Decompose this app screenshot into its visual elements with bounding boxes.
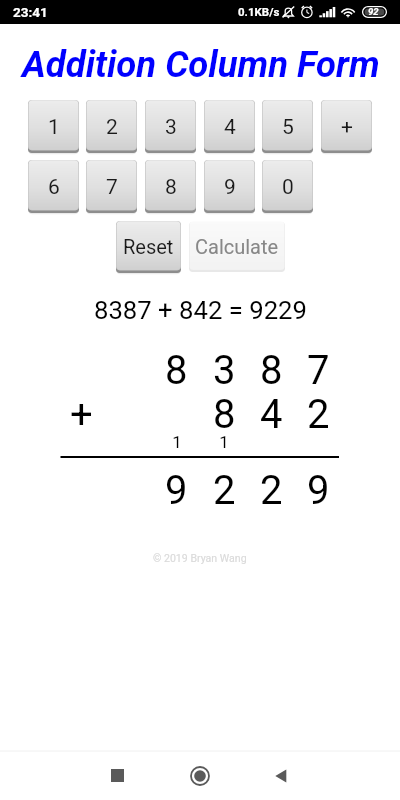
staticText: 8387 + 842 = 9229 bbox=[94, 295, 307, 325]
staticText: 0 bbox=[282, 175, 294, 200]
staticText: 4 bbox=[260, 391, 282, 438]
staticText: 3 bbox=[165, 115, 177, 140]
staticText: 4 bbox=[224, 115, 236, 140]
staticText: 8 bbox=[165, 347, 187, 394]
staticText: 0.1KB/s bbox=[238, 5, 280, 18]
staticText: 7 bbox=[307, 347, 329, 394]
staticText: 5 bbox=[282, 115, 294, 140]
staticText: © 2019 Bryan Wang bbox=[153, 552, 247, 564]
button[interactable]: 1 bbox=[28, 100, 79, 152]
staticText: 7 bbox=[106, 175, 118, 200]
button[interactable]: 3 bbox=[145, 100, 196, 152]
button[interactable]: Recents bbox=[93, 751, 141, 800]
button[interactable]: Reset bbox=[116, 221, 181, 272]
staticText: 1 bbox=[48, 115, 60, 140]
button[interactable]: + bbox=[321, 100, 372, 152]
button[interactable]: 6 bbox=[28, 160, 79, 212]
staticText: 1 bbox=[170, 432, 184, 452]
staticText: 9 bbox=[224, 175, 236, 200]
staticText: 3 bbox=[213, 347, 235, 394]
button[interactable]: 9 bbox=[204, 160, 255, 212]
staticText: 8 bbox=[165, 175, 177, 200]
staticText: 9 bbox=[307, 467, 329, 514]
button[interactable]: 4 bbox=[204, 100, 255, 152]
button[interactable]: 5 bbox=[262, 100, 313, 152]
staticText: 2 bbox=[260, 467, 282, 514]
button[interactable]: 2 bbox=[86, 100, 137, 152]
staticText: + bbox=[70, 391, 93, 438]
button[interactable]: 8 bbox=[145, 160, 196, 212]
staticText: 2 bbox=[307, 391, 329, 438]
button[interactable]: 7 bbox=[86, 160, 137, 212]
staticText: Calculate bbox=[195, 235, 279, 258]
staticText: 8 bbox=[260, 347, 282, 394]
staticText: 9 bbox=[165, 467, 187, 514]
staticText: 8 bbox=[213, 391, 235, 438]
staticText: 2 bbox=[213, 467, 235, 514]
button[interactable]: 0 bbox=[262, 160, 313, 212]
staticText: 92 bbox=[368, 6, 379, 17]
button[interactable]: Calculate bbox=[189, 221, 285, 272]
staticText: 6 bbox=[48, 175, 60, 200]
button[interactable]: Back bbox=[257, 751, 305, 800]
staticText: Reset bbox=[123, 235, 174, 258]
button[interactable]: Home bbox=[176, 751, 224, 800]
staticText: 1 bbox=[217, 432, 231, 452]
staticText: 23:41 bbox=[13, 4, 48, 20]
staticText: 2 bbox=[106, 115, 118, 140]
staticText: + bbox=[341, 115, 353, 140]
staticText: Addition Column Form bbox=[22, 43, 380, 86]
